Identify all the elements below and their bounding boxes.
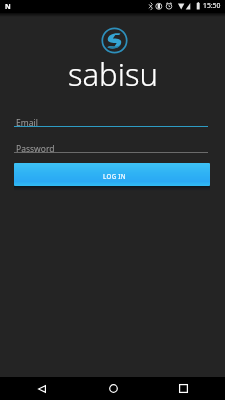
staticText: Email: [16, 117, 38, 129]
staticText: 15:50: [203, 1, 221, 10]
button[interactable]: LOG IN: [14, 163, 210, 186]
button[interactable]: Home: [95, 377, 131, 400]
staticText: N: [5, 2, 11, 12]
staticText: LOG IN: [103, 172, 126, 180]
staticText: sabisu: [68, 53, 158, 95]
staticText: Password: [16, 143, 55, 155]
button[interactable]: Password: [14, 138, 208, 153]
button[interactable]: Recents: [165, 377, 201, 400]
button[interactable]: Back: [24, 377, 60, 400]
button[interactable]: Email: [14, 112, 208, 127]
